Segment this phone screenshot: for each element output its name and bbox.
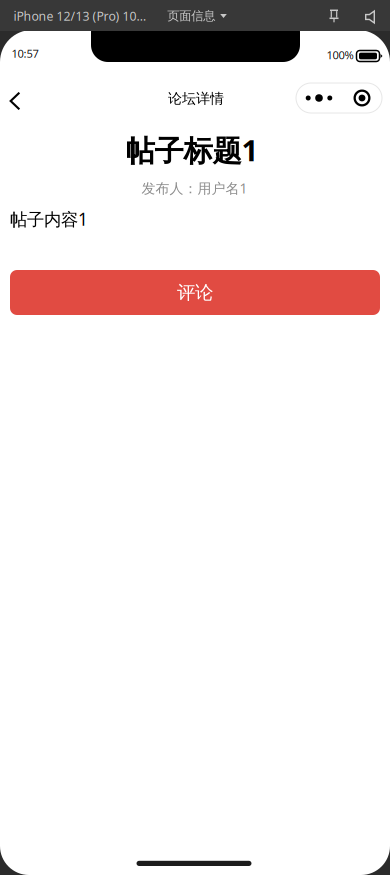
staticText: 100% [326,47,353,63]
staticText: 评论 [177,281,213,304]
staticText: 帖子内容1 [10,207,88,231]
staticText: 论坛详情 [168,90,224,107]
button[interactable]: Back [0,80,32,122]
button[interactable]: 页面信息 [162,0,232,31]
staticText: 发布人：用户名1 [141,178,247,197]
button[interactable]: Pin window [319,0,349,31]
button[interactable]: Sound [355,1,385,32]
staticText: 页面信息 [167,8,215,24]
staticText: iPhone 12/13 (Pro) 10… [13,8,146,24]
button[interactable]: Close mini program [342,83,382,113]
button[interactable]: More options [296,83,342,113]
staticText: 10:57 [11,46,38,61]
button[interactable]: 评论 [10,270,380,315]
staticText: 帖子标题1 [125,130,258,170]
